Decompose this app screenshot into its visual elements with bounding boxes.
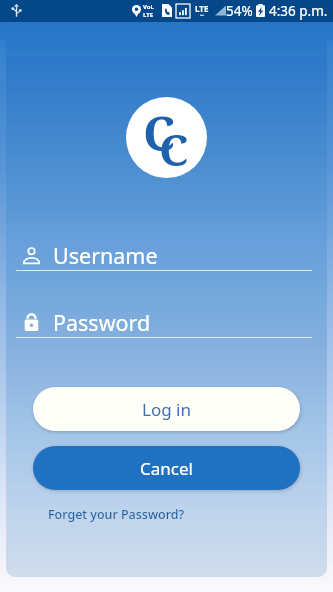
- staticText: Password: [53, 308, 151, 337]
- staticText: Log in: [142, 398, 191, 421]
- button[interactable]: Cancel: [33, 446, 300, 490]
- staticText: Username: [53, 241, 158, 270]
- staticText: ..: [200, 9, 204, 19]
- staticText: LTE: [143, 11, 154, 19]
- button[interactable]: Log in: [33, 387, 300, 431]
- staticText: 54%: [226, 2, 253, 20]
- staticText: 4:36 p.m.: [269, 2, 328, 20]
- staticText: VoL: [143, 3, 154, 11]
- staticText: C: [143, 100, 176, 162]
- staticText: Forget your Password?: [48, 506, 185, 523]
- button[interactable]: Forget your Password?: [44, 503, 189, 526]
- staticText: C: [159, 119, 189, 178]
- staticText: LTE: [195, 3, 209, 14]
- staticText: Cancel: [140, 457, 193, 480]
